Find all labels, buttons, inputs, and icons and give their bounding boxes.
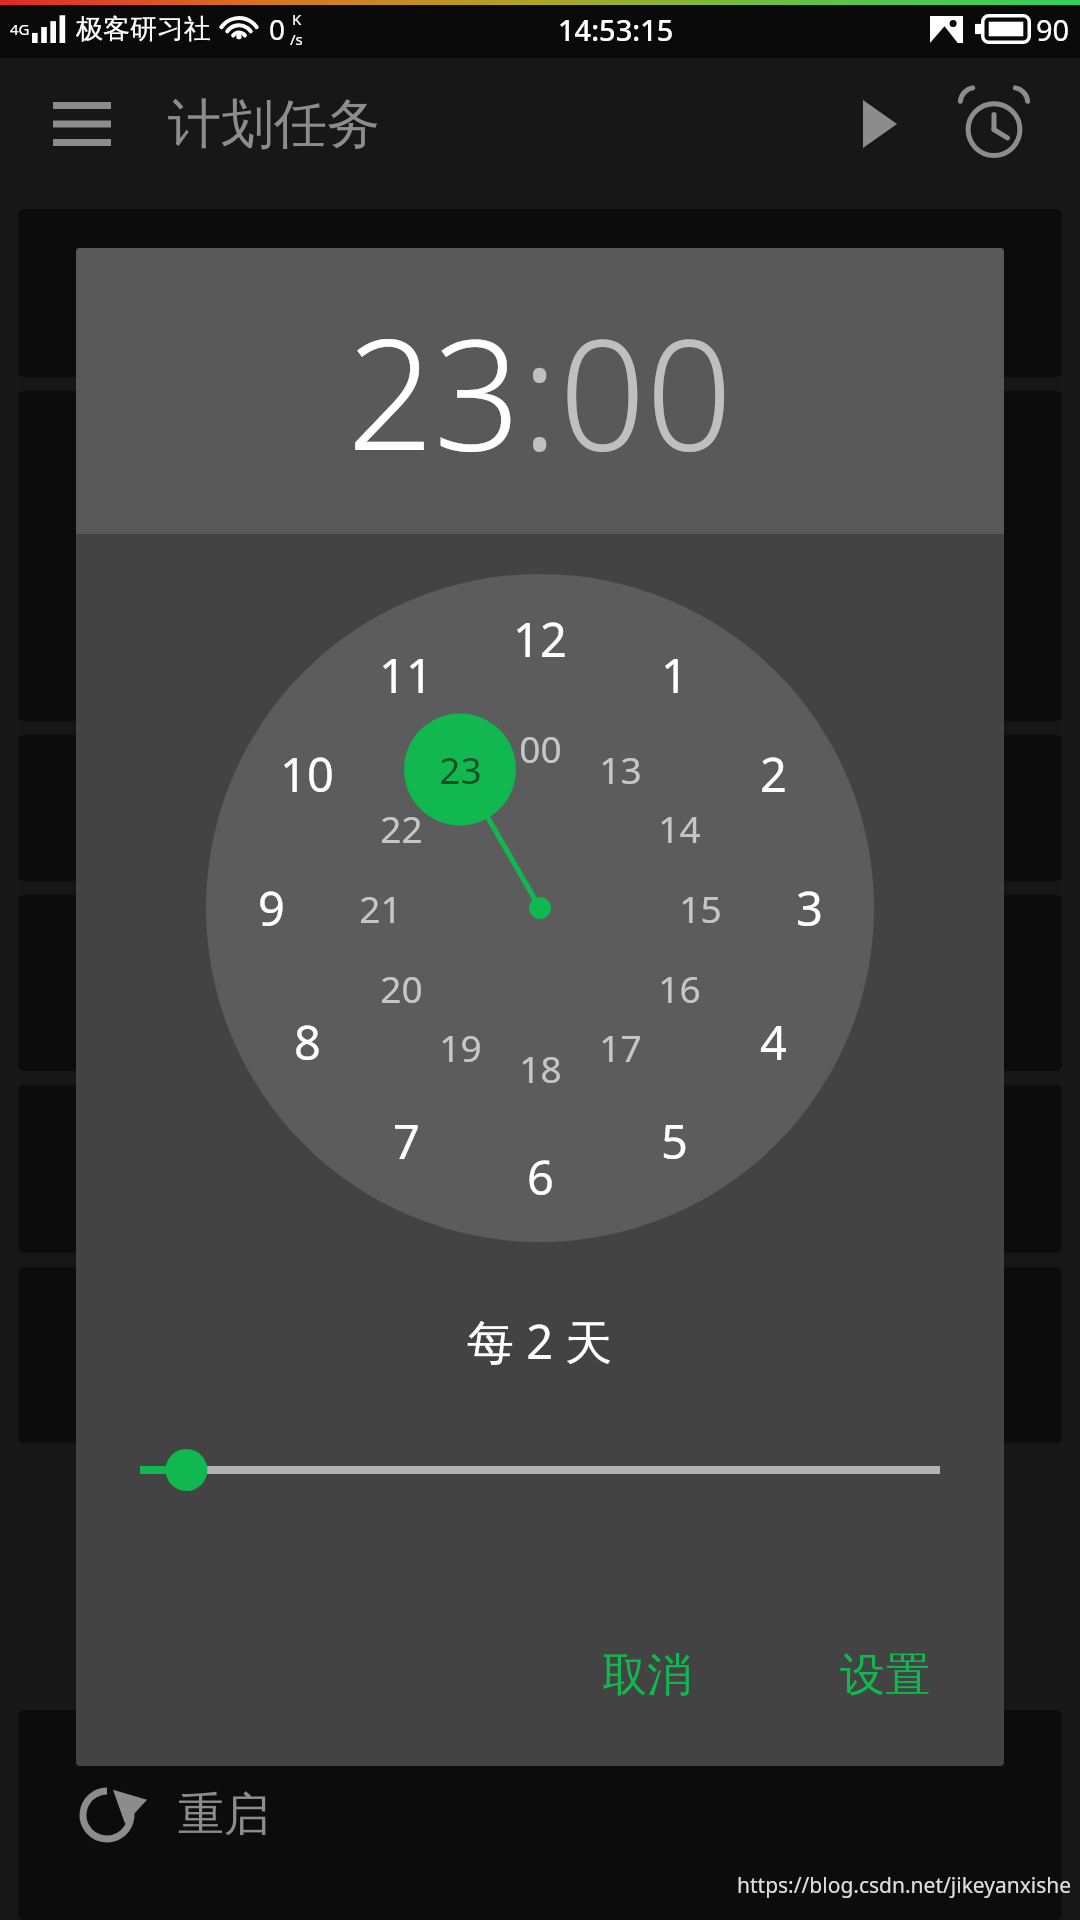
staticText: 3 [796, 876, 823, 940]
staticText: 18 [519, 1043, 562, 1093]
staticText: 12 [513, 607, 567, 671]
button[interactable]: 7 [351, 1107, 461, 1175]
button[interactable] [18, 209, 1062, 377]
button[interactable]: 4 [718, 1008, 828, 1076]
staticText: 计划任务 [168, 91, 380, 158]
button[interactable]: 重启 [18, 1710, 1062, 1920]
staticText: 00 [519, 723, 562, 773]
staticText: 5 [661, 1109, 688, 1173]
button[interactable]: Menu [40, 82, 124, 166]
staticText: 21 [359, 883, 402, 933]
staticText: 14:53:15 [558, 10, 674, 49]
staticText: 19 [439, 1022, 482, 1072]
staticText: 16 [658, 963, 701, 1013]
button[interactable]: 15 [645, 874, 755, 942]
staticText: 0 [269, 10, 286, 48]
button[interactable]: Run [838, 82, 922, 166]
button[interactable]: 16 [624, 954, 734, 1022]
button[interactable]: 23 [76, 248, 1004, 534]
button[interactable]: 9 [216, 874, 326, 942]
staticText: 6 [527, 1145, 554, 1209]
staticText: 4 [760, 1010, 787, 1074]
button[interactable]: 13 [565, 735, 675, 803]
staticText: 13 [599, 744, 642, 794]
button[interactable] [18, 1085, 1062, 1253]
staticText: 1 [661, 643, 688, 707]
staticText: 00 [559, 288, 733, 495]
button[interactable]: 20 [346, 954, 456, 1022]
button[interactable]: 取消 [578, 1631, 716, 1720]
staticText: 22 [380, 803, 423, 853]
staticText: 每 2 天 [467, 1309, 613, 1373]
staticText: : [521, 288, 559, 495]
button[interactable]: 23 [405, 735, 515, 803]
staticText: 90 [1036, 10, 1070, 49]
button[interactable]: 17 [565, 1013, 675, 1081]
button[interactable] [18, 391, 1062, 721]
button[interactable]: Alarm [948, 78, 1040, 170]
button[interactable]: 18 [485, 1034, 595, 1102]
button[interactable] [18, 735, 1062, 881]
staticText: 10 [280, 742, 334, 806]
button[interactable]: 5 [619, 1107, 729, 1175]
staticText: 23 [347, 288, 521, 495]
button[interactable]: 21 [325, 874, 435, 942]
button[interactable]: 6 [485, 1143, 595, 1211]
button[interactable]: 1 [619, 641, 729, 709]
button[interactable]: 14 [624, 794, 734, 862]
button[interactable] [18, 1267, 1062, 1443]
staticText: 23 [439, 744, 482, 794]
staticText: 4G [10, 19, 30, 39]
staticText: /s [290, 29, 303, 49]
staticText: 17 [599, 1022, 642, 1072]
button[interactable]: 19 [405, 1013, 515, 1081]
button[interactable]: 22 [346, 794, 456, 862]
staticText: 7 [393, 1109, 420, 1173]
button[interactable]: 3 [754, 874, 864, 942]
staticText: 取消 [602, 1647, 692, 1704]
staticText: https://blog.csdn.net/jikeyanxishe [737, 1871, 1072, 1900]
button[interactable]: 11 [351, 641, 461, 709]
staticText: 11 [379, 643, 433, 707]
button[interactable]: 8 [252, 1008, 362, 1076]
staticText: 极客研习社 [76, 12, 211, 46]
staticText: 9 [258, 876, 285, 940]
button[interactable]: 00 [485, 714, 595, 782]
staticText: 15 [679, 883, 722, 933]
button[interactable]: 2 [718, 740, 828, 808]
button[interactable]: 12 [485, 605, 595, 673]
staticText: K [292, 9, 302, 29]
button[interactable] [18, 895, 1062, 1071]
staticText: 8 [294, 1010, 321, 1074]
staticText: 14 [658, 803, 701, 853]
staticText: 重启 [178, 1786, 270, 1844]
staticText: 2 [760, 742, 787, 806]
staticText: 20 [380, 963, 423, 1013]
staticText: 设置 [840, 1647, 930, 1704]
button[interactable]: 10 [252, 740, 362, 808]
button[interactable] [140, 1400, 940, 1540]
button[interactable]: 设置 [816, 1631, 954, 1720]
